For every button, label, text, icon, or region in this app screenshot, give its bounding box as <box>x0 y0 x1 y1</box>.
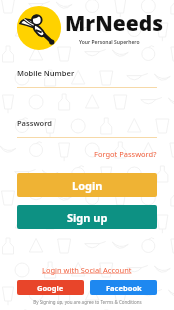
button[interactable]: Login with Social Account <box>42 265 132 275</box>
staticText: By Signing up, you are agree to Terms & … <box>33 299 142 305</box>
button[interactable]: Password <box>17 118 157 138</box>
staticText: Facebook <box>106 283 142 293</box>
button[interactable]: Login <box>17 173 157 197</box>
staticText: MrNeeds <box>65 9 163 38</box>
button[interactable]: Forgot Password? <box>94 149 157 159</box>
staticText: Mobile Number <box>17 68 75 78</box>
staticText: Password <box>17 118 53 128</box>
staticText: Google <box>37 283 64 293</box>
staticText: Your Personal Superhero <box>79 39 140 46</box>
staticText: Sign up <box>67 210 108 225</box>
staticText: Login <box>72 178 103 193</box>
button[interactable]: Google <box>17 280 84 295</box>
button[interactable]: Mobile Number <box>17 68 157 88</box>
button[interactable]: Sign up <box>17 205 157 229</box>
button[interactable]: Facebook <box>90 280 157 295</box>
